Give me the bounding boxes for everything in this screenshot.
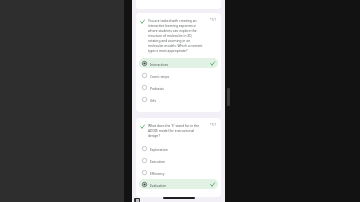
staticText: Exploration — [150, 147, 215, 151]
staticText: design? — [148, 133, 160, 137]
button[interactable]: You are tasked with creating an — [136, 13, 221, 112]
staticText: Efficiency — [150, 171, 215, 175]
staticText: rotating and zooming in on — [148, 38, 191, 42]
staticText: Evaluation — [150, 183, 210, 187]
button[interactable]: Podcasts — [139, 82, 218, 92]
button[interactable]: Execution — [139, 155, 218, 165]
staticText: Interactives — [150, 62, 210, 66]
button[interactable]: Recording indicator — [134, 198, 140, 202]
staticText: Execution — [150, 159, 215, 163]
button[interactable]: Comic strips — [139, 70, 218, 80]
staticText: ADDIE model for instructional — [148, 128, 195, 132]
button[interactable]: Evaluation — [139, 179, 218, 189]
staticText: Gifs — [150, 98, 215, 102]
staticText: What does the 'E' stand for in the — [148, 123, 200, 127]
staticText: Podcasts — [150, 86, 215, 90]
staticText: where students can explore the — [148, 28, 197, 32]
button[interactable]: Exploration — [139, 143, 218, 153]
staticText: *1/1 — [210, 18, 217, 22]
staticText: You are tasked with creating an — [148, 18, 197, 22]
button[interactable]: Gifs — [139, 94, 218, 104]
button[interactable]: Interactives — [139, 58, 218, 68]
button[interactable]: Efficiency — [139, 167, 218, 177]
button[interactable]: What does the 'E' stand for in the — [136, 118, 221, 197]
staticText: interactive learning experience — [148, 23, 196, 27]
staticText: type is most appropriate? — [148, 48, 188, 52]
staticText: Comic strips — [150, 74, 215, 78]
staticText: *1/1 — [210, 123, 217, 127]
staticText: structure of molecules in 3D, — [148, 33, 193, 37]
staticText: molecular models. Which a content — [148, 43, 203, 47]
